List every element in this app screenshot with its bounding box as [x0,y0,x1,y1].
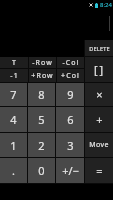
staticText: + [96,112,103,127]
staticText: T [12,58,17,68]
staticText: -1 [10,71,19,81]
button[interactable]: + [85,107,113,132]
other: Close [89,3,93,7]
staticText: 3 [67,138,74,153]
button[interactable]: DELETE [85,40,113,56]
staticText: [] [94,62,105,77]
staticText: -Row [32,58,53,68]
other: Battery [95,3,98,8]
staticText: . [12,163,15,178]
button[interactable]: T [0,57,28,68]
staticText: 8 [38,87,45,102]
staticText: 1 [10,138,17,153]
staticText: +Col [61,71,80,81]
button[interactable]: 3 [56,133,84,157]
button[interactable]: 0 [28,158,55,183]
staticText: DELETE [89,45,110,52]
staticText: 5 [38,112,45,127]
button[interactable]: = [85,158,113,183]
staticText: 8:24 [100,1,112,9]
button[interactable]: 9 [56,83,84,106]
button[interactable]: 1 [0,133,27,157]
staticText: 4 [10,112,17,127]
staticText: 6 [67,112,74,127]
button[interactable]: 6 [56,107,84,132]
staticText: = [96,163,103,178]
staticText: 0 [38,163,45,178]
staticText: +Row [31,71,54,81]
button[interactable]: 4 [0,107,27,132]
button[interactable]: 7 [0,83,27,106]
button[interactable]: 8 [28,83,55,106]
button[interactable]: 5 [28,107,55,132]
button[interactable]: +Col [57,69,84,82]
staticText: +/− [62,163,79,178]
staticText: × [96,87,103,102]
button[interactable]: -Row [29,57,56,68]
button[interactable]: +Row [29,69,56,82]
button[interactable]: +/− [56,158,84,183]
staticText: 9 [67,87,74,102]
button[interactable]: Move [85,133,113,157]
button[interactable]: -Col [57,57,84,68]
button[interactable]: 2 [28,133,55,157]
staticText: 7 [10,87,17,102]
staticText: Move [89,140,109,150]
button[interactable]: × [85,83,113,106]
button[interactable]: [] [85,57,113,82]
button[interactable]: . [0,158,27,183]
staticText: -Col [62,58,80,68]
staticText: 2 [38,138,45,153]
button[interactable]: -1 [0,69,28,82]
